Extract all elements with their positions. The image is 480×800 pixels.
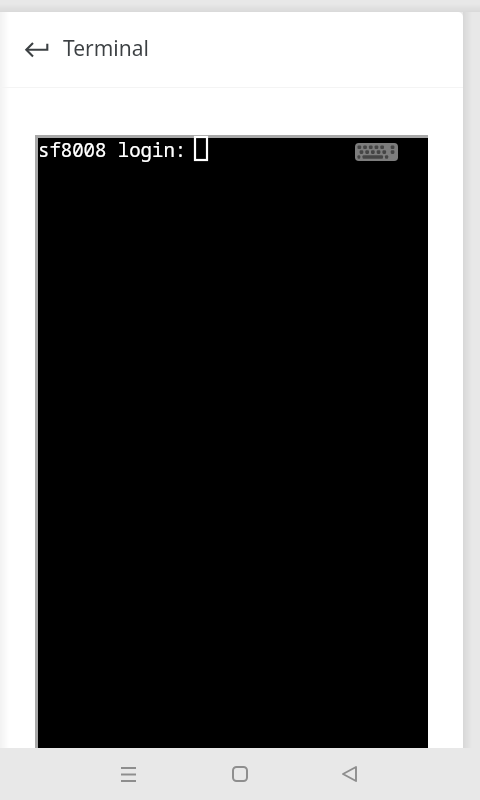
button[interactable]: Home bbox=[216, 750, 264, 798]
button[interactable]: Terminal console bbox=[38, 138, 428, 748]
button[interactable]: Show keyboard bbox=[355, 143, 398, 161]
button[interactable]: Recent apps bbox=[104, 750, 152, 798]
staticText: Terminal bbox=[63, 34, 149, 63]
button[interactable]: Back bbox=[325, 750, 373, 798]
staticText: sf8008 login: bbox=[38, 137, 198, 163]
button[interactable]: Back bbox=[13, 25, 61, 73]
